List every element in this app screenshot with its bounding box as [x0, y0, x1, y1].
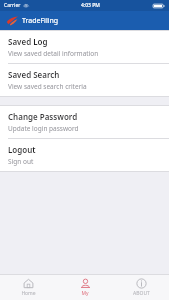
staticText: Update login password	[8, 124, 79, 133]
staticText: View saved detail information	[8, 49, 99, 58]
staticText: Sign out	[8, 157, 34, 166]
staticText: View saved search criteria	[8, 82, 87, 91]
staticText: Logout	[8, 144, 36, 155]
staticText: Carrier	[4, 2, 21, 9]
button[interactable]: Saved Log	[0, 31, 169, 63]
button[interactable]: Change Password	[0, 106, 169, 138]
staticText: Saved Search	[8, 69, 60, 80]
button[interactable]: My	[57, 275, 113, 300]
staticText: Change Password	[8, 111, 78, 122]
staticText: ABOUT	[133, 290, 150, 297]
staticText: TradeFiling	[22, 16, 59, 26]
button[interactable]: Home	[0, 275, 57, 300]
staticText: Saved Log	[8, 36, 48, 47]
staticText: My	[81, 290, 89, 297]
button[interactable]: Logout	[0, 139, 169, 171]
staticText: 4:03 PM	[81, 2, 100, 9]
button[interactable]: Saved Search	[0, 64, 169, 96]
staticText: Home	[21, 290, 36, 297]
button[interactable]: ABOUT	[113, 275, 169, 300]
